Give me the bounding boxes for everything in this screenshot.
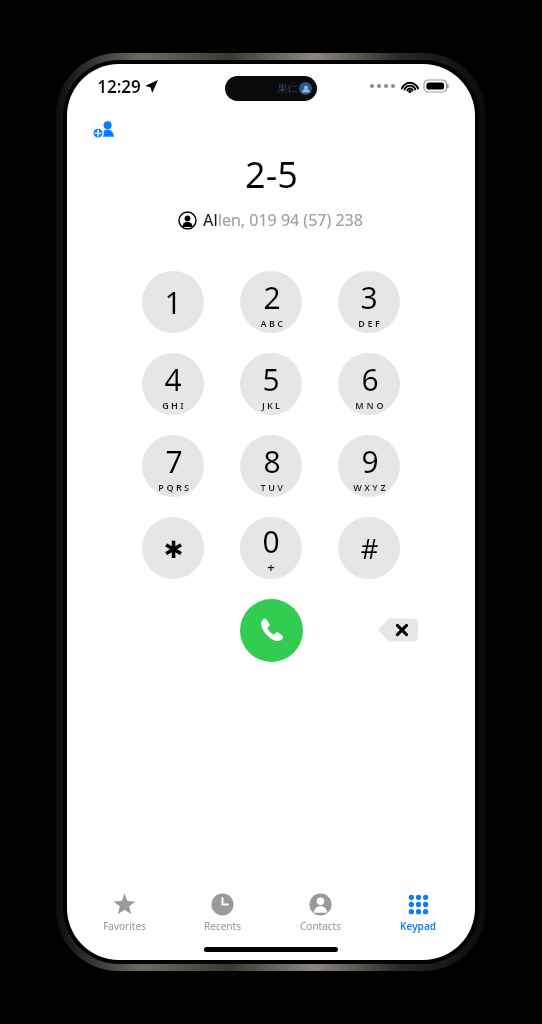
staticText: Keypad: [400, 919, 436, 933]
staticText: E: [367, 317, 373, 329]
staticText: 2: [263, 277, 281, 318]
button[interactable]: Favorites: [75, 887, 173, 939]
staticText: Recents: [204, 919, 241, 933]
staticText: D: [358, 317, 365, 329]
button[interactable]: 9: [338, 435, 400, 497]
staticText: 8: [263, 441, 281, 482]
staticText: Q: [166, 481, 174, 493]
staticText: Z: [380, 481, 386, 493]
staticText: Favorites: [103, 919, 146, 933]
staticText: W: [353, 481, 362, 493]
button[interactable]: 1: [142, 271, 204, 333]
button[interactable]: Delete: [375, 613, 421, 647]
staticText: R: [176, 481, 182, 493]
staticText: 5: [262, 359, 280, 400]
staticText: G: [162, 399, 169, 411]
button[interactable]: 6: [338, 353, 400, 415]
staticText: Contacts: [300, 919, 341, 933]
staticText: H: [171, 399, 178, 411]
staticText: P: [158, 481, 164, 493]
button[interactable]: Keypad: [369, 887, 467, 939]
staticText: J: [262, 399, 265, 411]
button[interactable]: Allen, 019 94 (57) 238: [67, 209, 475, 231]
staticText: U: [268, 481, 275, 493]
staticText: C: [277, 317, 283, 329]
staticText: V: [277, 481, 283, 493]
staticText: 7: [165, 441, 183, 482]
staticText: K: [267, 399, 273, 411]
staticText: ✱: [163, 536, 184, 564]
staticText: L: [275, 399, 280, 411]
button[interactable]: 2: [240, 271, 302, 333]
staticText: T: [260, 481, 266, 493]
staticText: 2-5: [245, 150, 298, 199]
staticText: 1: [164, 282, 182, 323]
staticText: 6: [361, 359, 379, 400]
staticText: M: [355, 399, 364, 411]
button[interactable]: 0: [240, 517, 302, 579]
staticText: B: [269, 317, 275, 329]
staticText: F: [375, 317, 380, 329]
button[interactable]: Add contact: [83, 112, 127, 148]
staticText: O: [376, 399, 384, 411]
button[interactable]: Call: [240, 599, 303, 662]
button[interactable]: 8: [240, 435, 302, 497]
button[interactable]: Recents: [173, 887, 271, 939]
button[interactable]: 7: [142, 435, 204, 497]
staticText: 果仁: [277, 82, 297, 95]
button[interactable]: #: [338, 517, 400, 579]
staticText: 4: [164, 359, 182, 400]
staticText: S: [184, 481, 189, 493]
button[interactable]: ✱: [142, 517, 204, 579]
staticText: 3: [360, 277, 378, 318]
staticText: #: [360, 529, 379, 567]
button[interactable]: Contacts: [271, 887, 369, 939]
staticText: Allen, 019 94 (57) 238: [203, 209, 363, 231]
staticText: N: [366, 399, 374, 411]
staticText: 12:29: [97, 75, 141, 98]
staticText: Y: [372, 481, 378, 493]
staticText: A: [260, 317, 267, 329]
staticText: +: [267, 558, 275, 576]
button[interactable]: 5: [240, 353, 302, 415]
staticText: 0: [262, 521, 280, 562]
button[interactable]: 3: [338, 271, 400, 333]
staticText: X: [364, 481, 370, 493]
staticText: I: [180, 399, 184, 411]
button[interactable]: 4: [142, 353, 204, 415]
staticText: 9: [361, 441, 379, 482]
